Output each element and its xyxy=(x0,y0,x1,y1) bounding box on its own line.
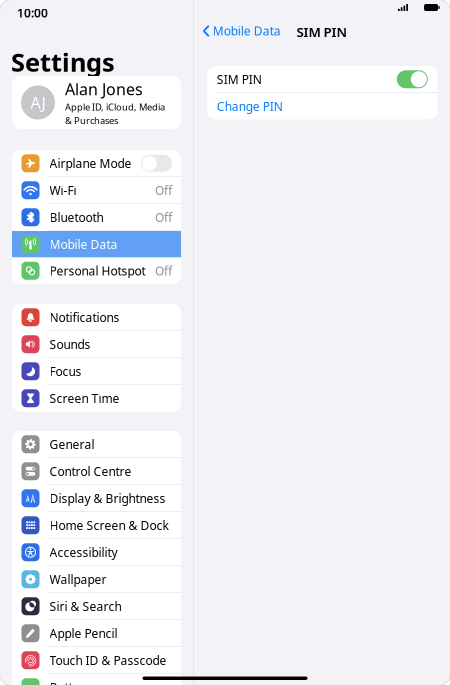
staticText: Siri & Search xyxy=(49,598,121,614)
staticText: Control Centre xyxy=(49,463,131,479)
button[interactable]: Battery xyxy=(12,674,181,685)
staticText: Notifications xyxy=(49,309,119,325)
button[interactable]: General xyxy=(12,431,181,457)
button[interactable]: Accessibility xyxy=(12,539,181,565)
staticText: Off xyxy=(155,209,172,225)
button[interactable]: AJ xyxy=(12,76,181,129)
staticText: Wallpaper xyxy=(49,571,106,587)
button[interactable]: Wi-Fi xyxy=(12,177,181,203)
button[interactable]: Touch ID & Passcode xyxy=(12,647,181,673)
staticText: Personal Hotspot xyxy=(49,263,145,279)
staticText: 10:00 xyxy=(17,5,48,21)
staticText: Airplane Mode xyxy=(49,155,131,171)
staticText: Settings xyxy=(11,45,115,79)
staticText: Home Screen & Dock xyxy=(49,517,168,533)
button[interactable]: Bluetooth xyxy=(12,204,181,230)
button[interactable]: Personal Hotspot xyxy=(12,257,181,284)
staticText: Display & Brightness xyxy=(49,490,165,506)
button[interactable]: Wallpaper xyxy=(12,566,181,592)
staticText: Mobile Data xyxy=(213,23,281,39)
staticText: Accessibility xyxy=(49,544,117,560)
button[interactable]: Control Centre xyxy=(12,458,181,484)
staticText: & Purchases xyxy=(65,114,118,126)
staticText: Apple Pencil xyxy=(49,625,117,641)
staticText: Focus xyxy=(49,363,81,379)
button[interactable]: Mobile Data xyxy=(12,231,181,257)
button[interactable]: Home Screen & Dock xyxy=(12,512,181,538)
button[interactable]: Screen Time xyxy=(12,385,181,411)
button[interactable]: Mobile Data xyxy=(203,23,281,39)
staticText: SIM PIN xyxy=(296,23,347,41)
button[interactable]: Focus xyxy=(12,358,181,384)
staticText: Battery xyxy=(49,679,90,685)
button[interactable]: Toggle SIM PIN xyxy=(397,70,428,88)
staticText: SIM PIN xyxy=(217,71,262,87)
staticText: Bluetooth xyxy=(49,209,103,225)
staticText: Off xyxy=(155,182,172,198)
staticText: General xyxy=(49,436,94,452)
staticText: Change PIN xyxy=(217,98,283,114)
button[interactable]: Siri & Search xyxy=(12,593,181,619)
staticText: AJ xyxy=(30,92,45,113)
button[interactable]: Apple Pencil xyxy=(12,620,181,646)
staticText: Wi-Fi xyxy=(49,182,76,198)
staticText: Mobile Data xyxy=(49,236,117,252)
button[interactable]: Sounds xyxy=(12,331,181,357)
button[interactable]: Change PIN xyxy=(207,93,438,119)
staticText: Alan Jones xyxy=(65,78,143,100)
staticText: Touch ID & Passcode xyxy=(49,652,166,668)
button[interactable]: Display & Brightness xyxy=(12,485,181,511)
staticText: Off xyxy=(155,263,172,279)
staticText: Screen Time xyxy=(49,390,119,406)
staticText: Sounds xyxy=(49,336,90,352)
button[interactable]: Notifications xyxy=(12,304,181,330)
button[interactable]: Airplane Mode xyxy=(12,150,181,176)
staticText: Apple ID, iCloud, Media xyxy=(65,101,165,113)
